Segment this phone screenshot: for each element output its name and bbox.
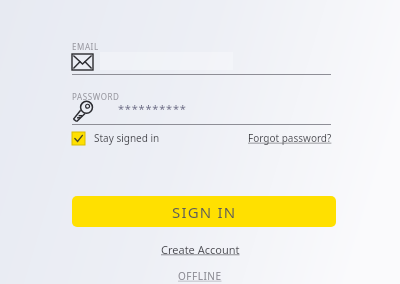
- staticText: OFFLINE: [178, 269, 222, 283]
- button[interactable]: Create Account: [161, 242, 240, 257]
- staticText: Stay signed in: [94, 131, 160, 145]
- staticText: EMAIL: [72, 41, 99, 52]
- staticText: **********: [118, 101, 187, 116]
- button[interactable]: Password field: [72, 100, 331, 124]
- button[interactable]: Stay signed in: [72, 128, 160, 148]
- button[interactable]: SIGN IN: [72, 196, 336, 227]
- staticText: SIGN IN: [172, 202, 237, 222]
- button[interactable]: OFFLINE: [178, 269, 222, 283]
- button[interactable]: Forgot password?: [248, 131, 332, 145]
- button[interactable]: Email field: [72, 52, 331, 74]
- staticText: Forgot password?: [248, 131, 332, 145]
- staticText: PASSWORD: [72, 91, 120, 102]
- staticText: Create Account: [161, 242, 240, 257]
